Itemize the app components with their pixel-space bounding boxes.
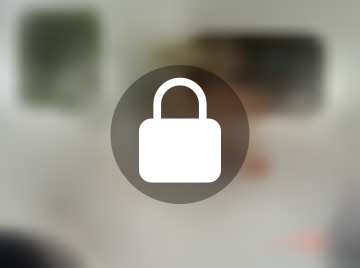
button[interactable]: Unlock content: [0, 0, 360, 268]
